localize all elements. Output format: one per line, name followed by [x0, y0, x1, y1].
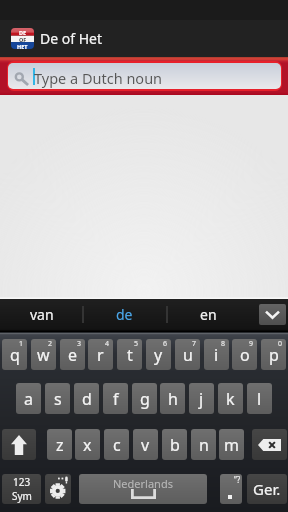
staticText: 6	[163, 339, 168, 349]
staticText: HET	[17, 43, 28, 49]
staticText: j	[199, 388, 204, 410]
staticText: y	[154, 344, 163, 366]
staticText: i	[214, 344, 219, 366]
button[interactable]: Backspace	[252, 429, 287, 460]
button[interactable]: s	[45, 383, 70, 414]
staticText: n	[199, 434, 209, 456]
button[interactable]: v	[133, 429, 158, 460]
button[interactable]: o	[232, 339, 257, 370]
button[interactable]: Settings	[45, 474, 71, 504]
staticText: 9	[249, 339, 254, 349]
button[interactable]: en	[167, 299, 250, 329]
button[interactable]: DE	[0, 20, 288, 57]
button[interactable]: z	[47, 429, 72, 460]
button[interactable]: i	[204, 339, 229, 370]
button[interactable]: x	[75, 429, 100, 460]
staticText: f	[113, 388, 119, 410]
staticText: 2	[48, 339, 53, 349]
staticText: Ger.	[253, 479, 281, 499]
staticText: h	[168, 388, 178, 410]
button[interactable]: h	[160, 383, 185, 414]
staticText: 5	[134, 339, 139, 349]
staticText: w	[37, 344, 50, 366]
button[interactable]: Shift	[2, 429, 36, 460]
staticText: o	[240, 344, 250, 366]
button[interactable]: q	[2, 339, 27, 370]
staticText: u	[183, 344, 193, 366]
button[interactable]: p	[261, 339, 286, 370]
staticText: 123	[13, 475, 31, 489]
button[interactable]: Space	[79, 474, 207, 504]
button[interactable]: f	[103, 383, 128, 414]
button[interactable]: d	[74, 383, 99, 414]
button[interactable]: g	[132, 383, 157, 414]
button[interactable]: Expand suggestions	[259, 304, 286, 325]
staticText: x	[83, 434, 92, 456]
staticText: z	[56, 434, 64, 456]
button[interactable]: t	[117, 339, 142, 370]
staticText: ”?	[234, 474, 241, 485]
button[interactable]: de	[83, 299, 166, 329]
button[interactable]: n	[191, 429, 216, 460]
button[interactable]: b	[162, 429, 187, 460]
button[interactable]: r	[88, 339, 113, 370]
staticText: e	[68, 344, 78, 366]
staticText: v	[141, 434, 150, 456]
staticText: 0	[278, 339, 283, 349]
staticText: s	[54, 388, 62, 410]
staticText: 7	[192, 339, 197, 349]
staticText: 8	[221, 339, 226, 349]
button[interactable]: j	[189, 383, 214, 414]
staticText: Type a Dutch noun	[34, 68, 163, 88]
button[interactable]: van	[0, 299, 83, 329]
button[interactable]: Symbols	[2, 474, 41, 504]
staticText: l	[257, 388, 262, 410]
staticText: g	[140, 388, 150, 410]
button[interactable]: Period	[220, 474, 242, 504]
staticText: c	[113, 434, 121, 456]
staticText: Sym	[12, 489, 32, 503]
staticText: a	[24, 388, 33, 410]
staticText: Nederlands	[113, 476, 173, 491]
staticText: OF	[19, 36, 27, 43]
button[interactable]: Search field	[8, 63, 281, 89]
staticText: 4	[105, 339, 110, 349]
button[interactable]: e	[60, 339, 85, 370]
button[interactable]: w	[31, 339, 56, 370]
button[interactable]: l	[247, 383, 272, 414]
button[interactable]: a	[16, 383, 41, 414]
staticText: DE	[19, 29, 27, 36]
staticText: van	[30, 305, 54, 324]
staticText: d	[82, 388, 92, 410]
staticText: r	[97, 344, 104, 366]
staticText: de	[116, 305, 133, 324]
staticText: t	[127, 344, 133, 366]
button[interactable]: u	[175, 339, 200, 370]
staticText: en	[200, 305, 217, 324]
staticText: k	[226, 388, 235, 410]
staticText: p	[269, 344, 279, 366]
staticText: De of Het	[40, 29, 103, 48]
staticText: q	[10, 344, 20, 366]
button[interactable]: Go	[247, 474, 287, 504]
button[interactable]: m	[219, 429, 244, 460]
button[interactable]: c	[104, 429, 129, 460]
button[interactable]: y	[146, 339, 171, 370]
staticText: b	[170, 434, 180, 456]
staticText: 1	[19, 339, 24, 349]
staticText: 3	[77, 339, 82, 349]
button[interactable]: k	[218, 383, 243, 414]
staticText: m	[224, 434, 239, 456]
